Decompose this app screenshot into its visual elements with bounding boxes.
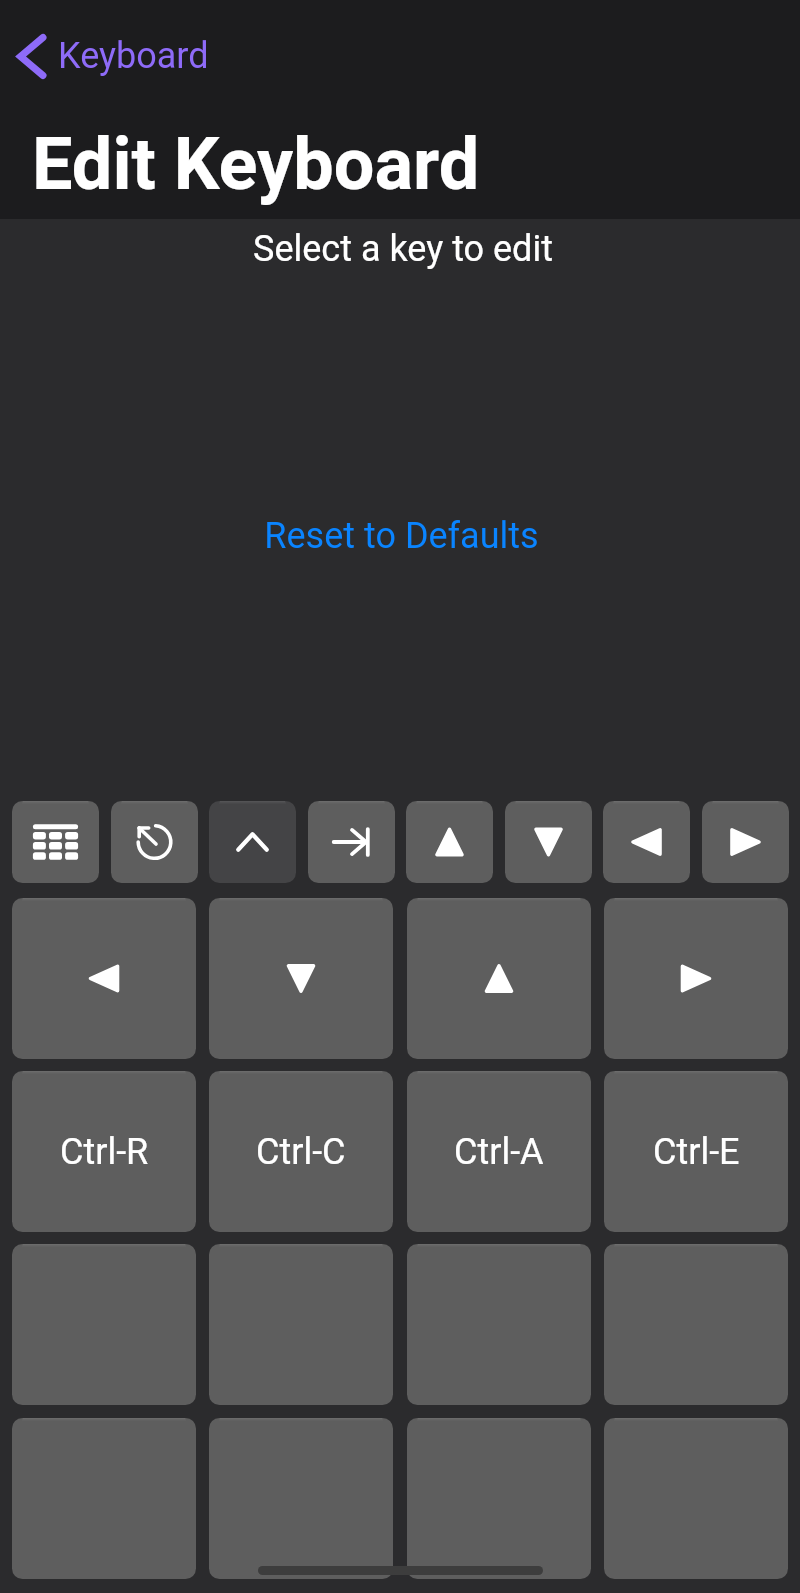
button[interactable]: Up	[406, 801, 493, 883]
button[interactable]: Down	[209, 898, 393, 1059]
button[interactable]	[407, 1418, 591, 1579]
button[interactable]	[604, 1244, 788, 1405]
button[interactable]: Ctrl-R	[12, 1071, 196, 1232]
button[interactable]	[12, 1244, 196, 1405]
button[interactable]: Ctrl-E	[604, 1071, 788, 1232]
button[interactable]: Keyboard	[10, 26, 225, 86]
button[interactable]	[604, 1418, 788, 1579]
staticText: Ctrl-A	[454, 1131, 544, 1173]
button[interactable]	[209, 1418, 393, 1579]
button[interactable]	[407, 1244, 591, 1405]
staticText: Keyboard	[58, 35, 209, 77]
staticText: Ctrl-R	[60, 1131, 149, 1173]
button[interactable]: Tab	[308, 801, 395, 883]
button[interactable]: Right	[702, 801, 789, 883]
button[interactable]	[12, 1418, 196, 1579]
staticText: Ctrl-E	[653, 1131, 740, 1173]
button[interactable]: Reset to Defaults	[251, 511, 551, 561]
staticText: Edit Keyboard	[32, 122, 480, 206]
staticText: Select a key to edit	[3, 228, 800, 270]
button[interactable]: Ctrl-C	[209, 1071, 393, 1232]
button[interactable]: Ctrl-A	[407, 1071, 591, 1232]
button[interactable]: Keyboard layout	[12, 801, 99, 883]
staticText: Reset to Defaults	[264, 515, 539, 557]
button[interactable]: Undo	[111, 801, 198, 883]
button[interactable]: Up	[407, 898, 591, 1059]
button[interactable]: Left	[603, 801, 690, 883]
button[interactable]: Shift	[209, 801, 296, 883]
staticText: Ctrl-C	[256, 1131, 346, 1173]
button[interactable]: Right	[604, 898, 788, 1059]
button[interactable]: Down	[505, 801, 592, 883]
button[interactable]: Left	[12, 898, 196, 1059]
button[interactable]	[209, 1244, 393, 1405]
